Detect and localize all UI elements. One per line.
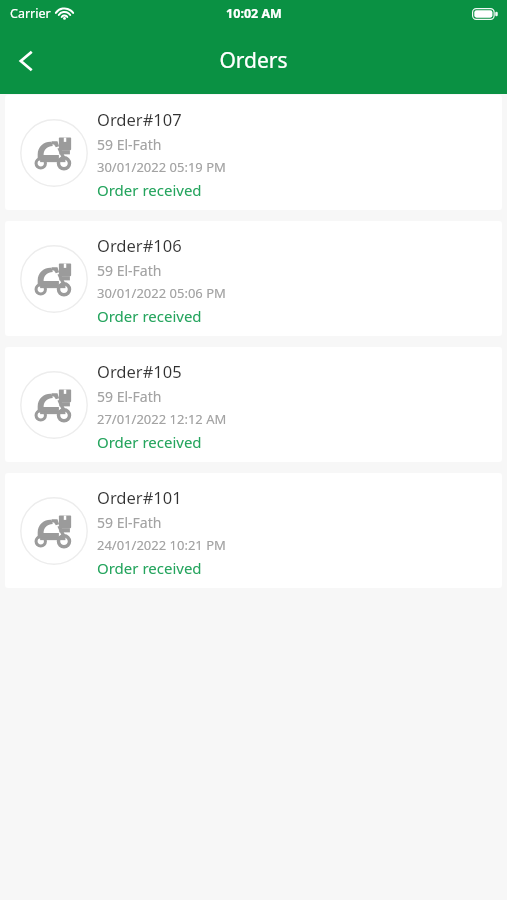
staticText: Order received [97,432,202,452]
button[interactable]: Order#105 [5,347,502,462]
staticText: Order#101 [97,486,182,508]
button[interactable]: Order#107 [5,95,502,210]
staticText: Order#106 [97,234,182,256]
staticText: Order received [97,180,202,200]
staticText: Carrier [10,5,51,22]
staticText: Order#105 [97,360,182,382]
staticText: 24/01/2022 10:21 PM [97,536,226,554]
button[interactable]: Back [0,35,52,87]
staticText: Orders [219,46,288,75]
staticText: Order received [97,558,202,578]
staticText: 59 El-Fath [97,513,162,532]
staticText: 27/01/2022 12:12 AM [97,410,227,428]
button[interactable]: Order#101 [5,473,502,588]
staticText: 30/01/2022 05:19 PM [97,158,226,176]
staticText: 30/01/2022 05:06 PM [97,284,226,302]
staticText: 10:02 AM [226,5,282,22]
staticText: 59 El-Fath [97,261,162,280]
staticText: Order received [97,306,202,326]
staticText: Order#107 [97,108,182,130]
staticText: 59 El-Fath [97,135,162,154]
staticText: 59 El-Fath [97,387,162,406]
button[interactable]: Order#106 [5,221,502,336]
